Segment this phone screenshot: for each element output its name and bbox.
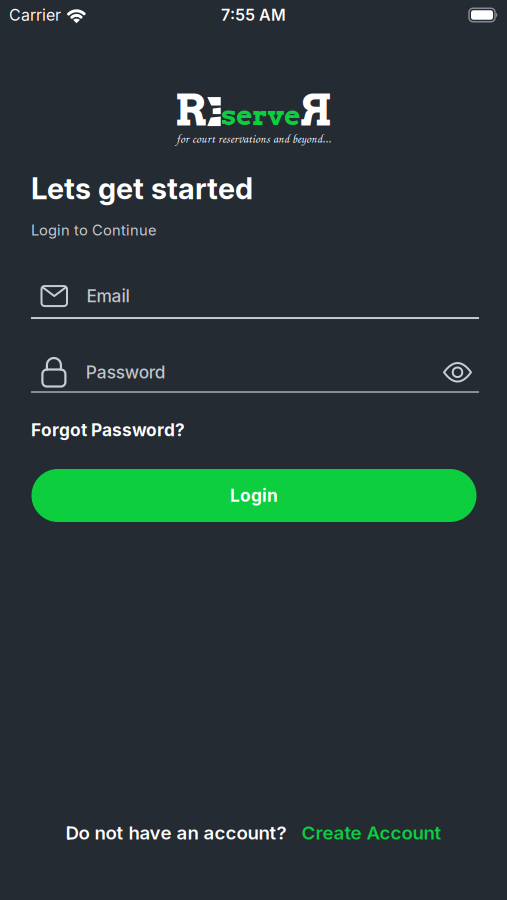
staticText: for court reservations and beyond... [176,130,331,146]
button[interactable]: Login [31,469,476,522]
staticText: Carrier [9,5,61,25]
staticText: serve [221,98,300,132]
staticText: Password [86,362,166,383]
staticText: Login [230,485,278,506]
button[interactable]: Create Account [301,821,441,844]
button[interactable]: Show password [444,361,471,383]
staticText: Do not have an account? [65,821,286,844]
staticText: Lets get started [31,171,253,206]
staticText: 7:55 AM [221,5,286,25]
staticText: R [175,84,207,136]
staticText: Email [86,286,129,307]
staticText: R [300,84,332,136]
staticText: Forgot Password? [31,419,185,440]
staticText: Login to Continue [31,221,157,239]
staticText: Create Account [301,821,441,844]
button[interactable]: Forgot Password? [31,419,185,440]
